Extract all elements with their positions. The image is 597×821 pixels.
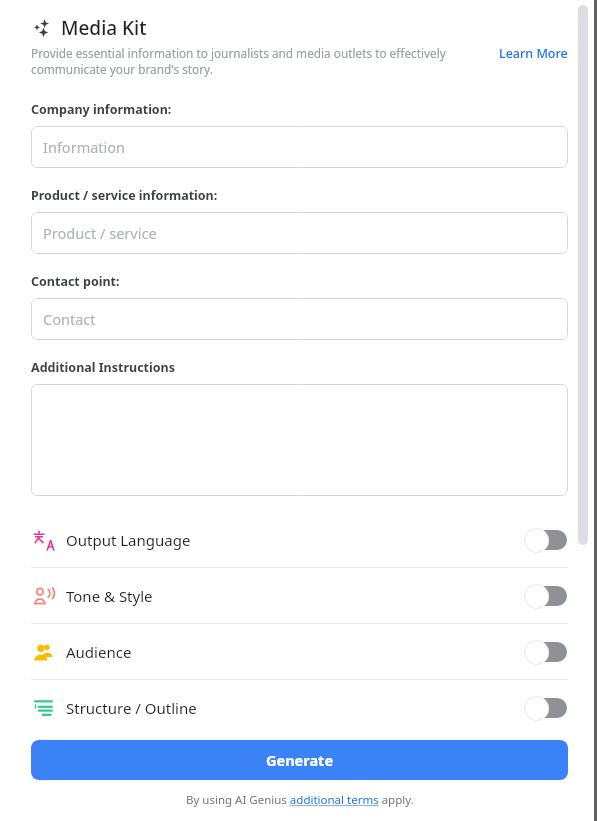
button[interactable]: Generate [31,740,568,780]
button[interactable] [31,384,568,496]
button[interactable]: Product / service [31,212,568,254]
button[interactable]: Information [31,126,568,168]
staticText: Additional Instructions [31,359,175,376]
staticText: Media Kit [61,15,147,41]
other: Structure or outline [31,696,55,720]
staticText: Structure / Outline [66,698,197,718]
other: Audience [31,640,55,664]
staticText: Information [43,137,126,157]
staticText: Learn More [499,45,568,62]
other: Tone and style [31,584,55,608]
staticText: Contact point: [31,273,120,290]
staticText: Tone & Style [66,586,153,606]
button[interactable]: Contact [31,298,568,340]
staticText: Product / service information: [31,187,218,204]
button[interactable]: Learn More [499,45,568,62]
button[interactable]: By using AI Genius additional terms appl… [186,792,414,808]
staticText: Provide essential information to journal… [31,45,493,78]
staticText: Product / service [43,223,157,243]
staticText: Company information: [31,101,172,118]
other: Output language [31,528,55,552]
staticText: By using AI Genius additional terms appl… [186,792,414,808]
staticText: Contact [43,309,96,329]
button[interactable]: Audience [31,624,568,679]
button[interactable]: Structure or outline [31,680,568,735]
staticText: Audience [66,642,132,662]
staticText: Output Language [66,530,191,550]
staticText: Generate [266,750,334,770]
button[interactable]: Tone and style [31,568,568,623]
button[interactable]: Output language [31,512,568,567]
